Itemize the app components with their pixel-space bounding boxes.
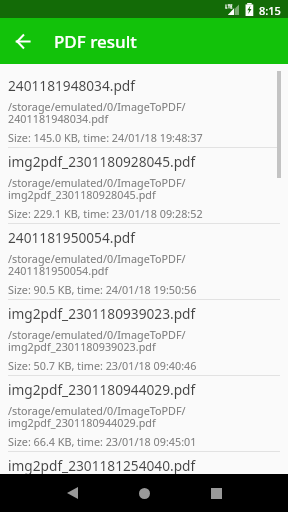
staticText: Size: 90.5 KB, time: 24/01/18 19:50:56 bbox=[8, 282, 197, 297]
staticText: 2401181948034.pdf bbox=[8, 76, 135, 95]
button[interactable]: 2401181950054.pdf bbox=[0, 224, 288, 300]
button[interactable]: 2401181948034.pdf bbox=[0, 72, 288, 148]
staticText: 8:15 bbox=[259, 3, 281, 18]
button[interactable]: Back bbox=[48, 474, 96, 512]
button[interactable]: Recent apps bbox=[192, 474, 240, 512]
staticText: Size: 229.1 KB, time: 23/01/18 09:28:52 bbox=[8, 206, 203, 221]
staticText: 2401181950054.pdf bbox=[8, 228, 135, 247]
staticText: PDF result bbox=[54, 30, 137, 53]
staticText: img2pdf_2301181254040.pdf bbox=[8, 456, 196, 474]
staticText: /storage/emulated/0/ImageToPDF/ 24011819… bbox=[8, 251, 186, 279]
button[interactable]: img2pdf_2301181254040.pdf bbox=[0, 452, 288, 474]
staticText: /storage/emulated/0/ImageToPDF/ img2pdf_… bbox=[8, 327, 186, 355]
staticText: /storage/emulated/0/ImageToPDF/ 24011819… bbox=[8, 99, 186, 127]
staticText: /storage/emulated/0/ImageToPDF/ img2pdf_… bbox=[8, 175, 186, 203]
staticText: img2pdf_2301180939023.pdf bbox=[8, 304, 196, 323]
staticText: Size: 66.4 KB, time: 23/01/18 09:45:01 bbox=[8, 434, 197, 449]
staticText: img2pdf_2301180944029.pdf bbox=[8, 380, 196, 399]
button[interactable]: Navigate up bbox=[5, 23, 41, 59]
staticText: img2pdf_2301180928045.pdf bbox=[8, 152, 196, 171]
staticText: Size: 50.7 KB, time: 23/01/18 09:40:46 bbox=[8, 358, 197, 373]
button[interactable]: img2pdf_2301180939023.pdf bbox=[0, 300, 288, 376]
button[interactable]: Home bbox=[120, 474, 168, 512]
staticText: /storage/emulated/0/ImageToPDF/ img2pdf_… bbox=[8, 403, 186, 431]
button[interactable]: img2pdf_2301180944029.pdf bbox=[0, 376, 288, 452]
button[interactable]: img2pdf_2301180928045.pdf bbox=[0, 148, 288, 224]
staticText: Size: 145.0 KB, time: 24/01/18 19:48:37 bbox=[8, 130, 203, 145]
